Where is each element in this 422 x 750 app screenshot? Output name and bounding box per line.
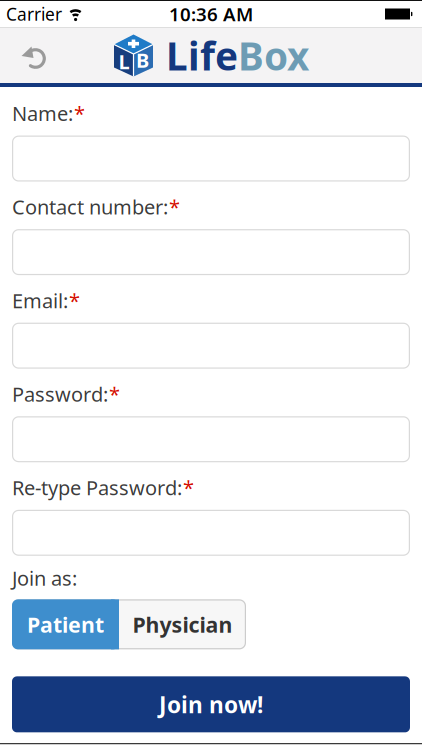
staticText: Password: <box>12 381 108 407</box>
button[interactable] <box>12 416 410 462</box>
staticText: Contact number: <box>12 194 168 220</box>
button[interactable] <box>12 229 410 275</box>
staticText: Name: <box>12 100 73 127</box>
staticText: Email: <box>12 287 68 314</box>
button[interactable]: Patient <box>12 599 119 649</box>
button[interactable] <box>12 323 410 369</box>
button[interactable] <box>12 510 410 556</box>
staticText: Life <box>166 30 238 81</box>
staticText: Re-type Password: <box>12 474 182 501</box>
staticText: * <box>169 194 180 220</box>
button[interactable] <box>12 136 410 182</box>
staticText: L <box>118 48 129 75</box>
staticText: * <box>183 474 194 501</box>
button[interactable]: Physician <box>119 599 246 649</box>
staticText: Carrier <box>6 2 62 25</box>
staticText: Box <box>238 30 309 81</box>
staticText: Join now! <box>159 689 263 719</box>
staticText: Patient <box>27 610 104 638</box>
staticText: Physician <box>132 610 232 638</box>
staticText: * <box>109 381 120 407</box>
staticText: * <box>74 100 85 127</box>
staticText: Join as: <box>12 565 77 591</box>
button[interactable]: Join now! <box>12 676 410 732</box>
staticText: B <box>136 47 149 73</box>
staticText: 10:36 AM <box>169 2 253 26</box>
staticText: * <box>69 287 80 314</box>
button[interactable] <box>0 40 48 71</box>
